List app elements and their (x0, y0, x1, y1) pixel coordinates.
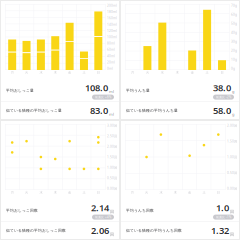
staticText: 回 (110, 232, 114, 237)
staticText: 似ている猫種の平均おしっこ量 (6, 108, 62, 113)
staticText: 0g (231, 66, 235, 71)
button[interactable]: 平均おしっこ量 (1, 79, 119, 101)
staticText: 前週比 +8% (95, 95, 111, 99)
staticText: ml (109, 89, 114, 94)
staticText: 3.00回 (107, 123, 117, 128)
staticText: 0.50回 (107, 176, 117, 180)
staticText: 120ml (107, 28, 117, 33)
button[interactable]: 似ている猫種の平均うんち回数 (121, 222, 239, 239)
button[interactable]: 平均うんち回数 (121, 199, 239, 221)
staticText: 水 (39, 190, 42, 194)
staticText: 2.14 (91, 201, 109, 214)
button[interactable]: 平均うんち量 (121, 79, 239, 101)
staticText: 前週比 +4% (95, 215, 111, 219)
staticText: 土 (82, 70, 85, 74)
staticText: 火 (145, 190, 148, 194)
staticText: 水 (159, 190, 162, 194)
staticText: 0.50回 (227, 171, 237, 175)
staticText: 平均うんち回数 (126, 208, 154, 213)
staticText: 2.50回 (107, 134, 117, 138)
staticText: 木 (176, 70, 179, 74)
staticText: 140ml (107, 22, 117, 27)
staticText: 30g (231, 39, 237, 44)
staticText: 月 (131, 190, 134, 194)
staticText: 火 (25, 190, 28, 194)
staticText: 回 (230, 232, 234, 237)
staticText: 土 (202, 190, 205, 194)
staticText: 20g (231, 48, 237, 53)
staticText: 火 (146, 70, 149, 74)
staticText: 木 (54, 70, 57, 74)
staticText: 日 (217, 190, 220, 194)
staticText: 土 (206, 70, 209, 74)
staticText: 10g (231, 57, 237, 62)
staticText: 平均うんち量 (126, 88, 150, 93)
staticText: 200ml (107, 3, 117, 8)
staticText: 水 (161, 70, 164, 74)
staticText: 60g (231, 12, 237, 17)
staticText: 月 (131, 70, 134, 74)
staticText: 160ml (107, 16, 117, 20)
staticText: 平均おしっこ量 (6, 88, 34, 93)
button[interactable]: 似ている猫種の平均うんち量 (121, 102, 239, 119)
staticText: 日 (220, 70, 223, 74)
staticText: 0.00回 (227, 186, 237, 191)
staticText: 50g (231, 21, 237, 26)
staticText: 日 (97, 190, 100, 194)
staticText: 2.00回 (227, 123, 237, 128)
staticText: 80ml (107, 41, 115, 45)
staticText: 58.0 (213, 104, 231, 117)
staticText: 1.00回 (107, 165, 117, 170)
staticText: 金 (188, 190, 191, 194)
staticText: 60ml (107, 47, 115, 52)
staticText: 180ml (107, 10, 117, 14)
staticText: 20ml (107, 60, 115, 64)
staticText: 70g (231, 3, 237, 8)
staticText: 40ml (107, 54, 115, 58)
staticText: 0.00回 (107, 186, 117, 191)
staticText: 1.0 (216, 201, 229, 214)
staticText: 40g (231, 30, 237, 35)
staticText: 83.0 (90, 104, 108, 117)
button[interactable]: 似ている猫種の平均おしっこ回数 (1, 222, 119, 239)
staticText: ml (109, 111, 114, 117)
staticText: 1.32 (211, 224, 229, 237)
staticText: 前週比 -2% (216, 95, 231, 99)
staticText: 火 (25, 70, 28, 74)
staticText: g (232, 111, 234, 117)
staticText: 土 (82, 190, 85, 194)
staticText: 108.0 (85, 81, 108, 94)
button[interactable]: 平均おしっこ回数 (1, 199, 119, 221)
staticText: 月 (11, 70, 14, 74)
staticText: 木 (174, 190, 177, 194)
staticText: 100ml (107, 35, 117, 39)
staticText: 金 (191, 70, 194, 74)
staticText: 似ている猫種の平均おしっこ回数 (6, 228, 66, 233)
staticText: 1.50回 (227, 139, 237, 143)
staticText: g (232, 89, 234, 94)
staticText: 2.06 (91, 224, 109, 237)
staticText: 38.0 (213, 81, 231, 94)
staticText: 2.00回 (107, 144, 117, 149)
staticText: 水 (39, 70, 42, 74)
staticText: 前週比 -1% (216, 215, 231, 219)
staticText: 日 (97, 70, 100, 74)
staticText: 木 (54, 190, 57, 194)
staticText: 似ている猫種の平均うんち量 (126, 108, 178, 113)
staticText: 回 (230, 209, 234, 214)
button[interactable]: 似ている猫種の平均おしっこ量 (1, 102, 119, 119)
staticText: 似ている猫種の平均うんち回数 (126, 228, 182, 233)
staticText: 1.00回 (227, 155, 237, 159)
staticText: 平均おしっこ回数 (6, 208, 38, 213)
staticText: 金 (68, 70, 71, 74)
staticText: 回 (110, 209, 114, 214)
staticText: 1.50回 (107, 155, 117, 159)
staticText: 0ml (107, 66, 113, 71)
staticText: 金 (68, 190, 71, 194)
staticText: 月 (11, 190, 14, 194)
